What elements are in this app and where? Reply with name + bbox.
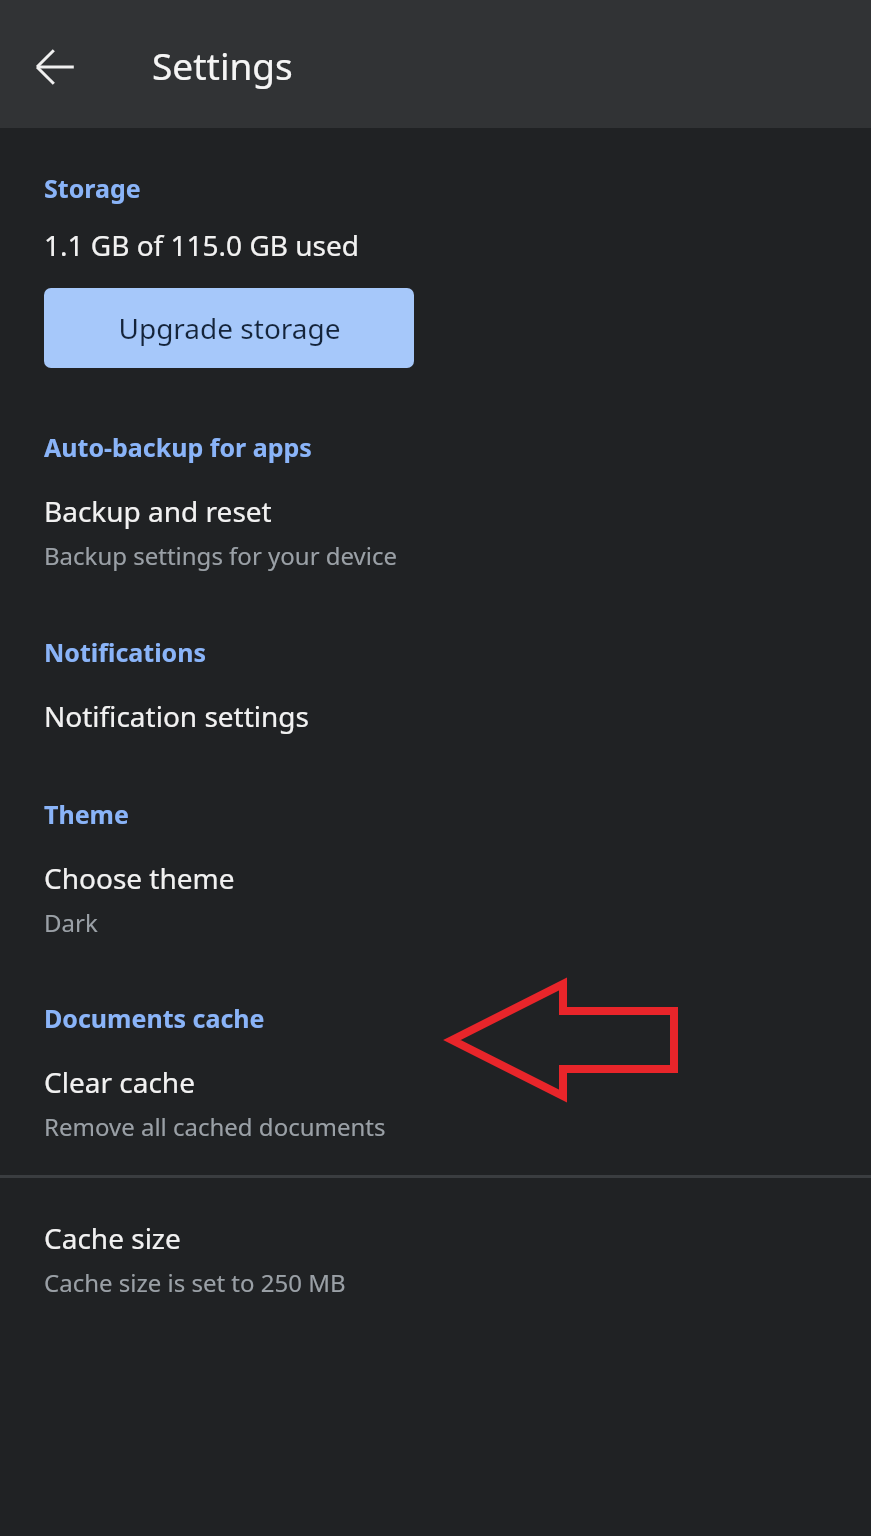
staticText: Choose theme <box>44 859 235 897</box>
staticText: Documents cache <box>44 1001 265 1035</box>
button[interactable]: Clear cache <box>0 1063 871 1143</box>
staticText: Upgrade storage <box>118 309 341 347</box>
staticText: Storage <box>44 171 141 205</box>
staticText: Dark <box>44 906 98 939</box>
staticText: Cache size <box>44 1219 181 1257</box>
staticText: 1.1 GB of 115.0 GB used <box>44 226 359 264</box>
button[interactable]: Notification settings <box>0 697 871 735</box>
staticText: Backup settings for your device <box>44 539 398 572</box>
staticText: Settings <box>152 40 293 90</box>
staticText: Notification settings <box>44 697 309 735</box>
staticText: Notifications <box>44 635 207 669</box>
staticText: Clear cache <box>44 1063 195 1101</box>
staticText: Theme <box>44 797 129 831</box>
staticText: Backup and reset <box>44 492 272 530</box>
staticText: Auto-backup for apps <box>44 430 312 464</box>
staticText: Cache size is set to 250 MB <box>44 1266 346 1299</box>
button[interactable]: Upgrade storage <box>44 288 414 368</box>
button[interactable]: Cache size <box>0 1219 871 1299</box>
button[interactable]: Backup and reset <box>0 492 871 572</box>
button[interactable]: Back <box>19 31 91 103</box>
button[interactable]: Choose theme <box>0 859 871 939</box>
staticText: Remove all cached documents <box>44 1110 386 1143</box>
